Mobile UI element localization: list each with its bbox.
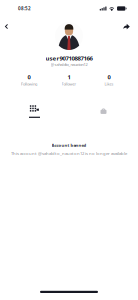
button[interactable]: Back xyxy=(0,21,13,32)
staticText: 0 xyxy=(107,73,110,81)
staticText: user90710887166 xyxy=(45,54,92,62)
button[interactable]: Private videos xyxy=(69,107,138,116)
staticText: 1 xyxy=(67,73,70,81)
staticText: Likes xyxy=(104,81,113,87)
staticText: 08:52 xyxy=(18,5,31,12)
button[interactable]: Share xyxy=(120,22,133,31)
button[interactable]: 0 xyxy=(89,73,129,87)
staticText: @sahaldto_nauxton12 xyxy=(50,62,87,67)
staticText: 0 xyxy=(27,73,30,81)
button[interactable]: 0 xyxy=(9,73,49,87)
button[interactable]: Videos xyxy=(0,106,69,118)
staticText: Following xyxy=(21,81,37,87)
staticText: This account @sahaldto_nauxton12 is no l… xyxy=(11,150,127,156)
staticText: Account banned xyxy=(51,142,86,148)
staticText: Follower xyxy=(61,81,76,87)
button[interactable]: 1 xyxy=(49,73,89,87)
